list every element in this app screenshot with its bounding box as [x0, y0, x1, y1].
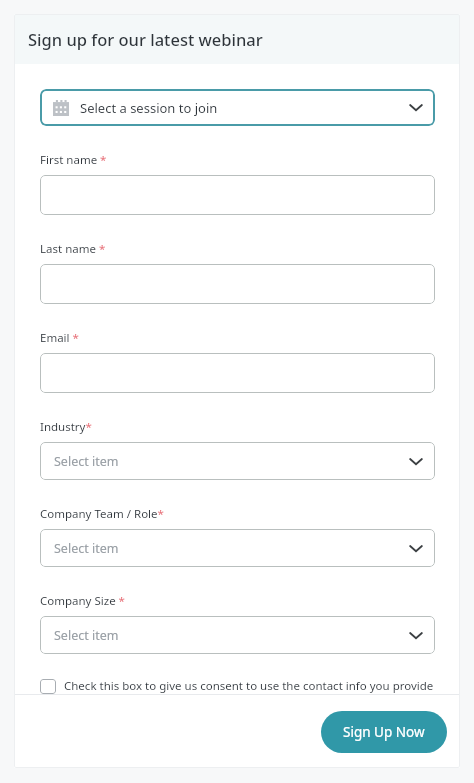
button[interactable]: Select item	[40, 616, 435, 654]
staticText: Select item	[54, 627, 119, 644]
button[interactable]	[40, 264, 435, 304]
button[interactable]: Sign Up Now	[321, 711, 447, 753]
staticText: Email *	[40, 330, 79, 346]
staticText: Check this box to give us consent to use…	[64, 678, 435, 694]
staticText: Company Size *	[40, 593, 125, 609]
button[interactable]	[40, 175, 435, 215]
staticText: First name *	[40, 152, 107, 168]
button[interactable]: Select item	[40, 529, 435, 567]
button[interactable]: Check this box to give us consent to use…	[40, 678, 435, 694]
button[interactable]	[40, 353, 435, 393]
staticText: Industry*	[40, 419, 92, 435]
staticText: Sign up for our latest webinar	[28, 28, 263, 50]
staticText: Select item	[54, 453, 119, 470]
staticText: Select item	[54, 540, 119, 557]
button[interactable]: Select a session to join	[40, 89, 435, 126]
staticText: Company Team / Role*	[40, 506, 164, 522]
staticText: Select a session to join	[80, 99, 218, 117]
staticText: Sign Up Now	[343, 723, 425, 741]
staticText: Last name *	[40, 241, 106, 257]
button[interactable]: Select item	[40, 442, 435, 480]
